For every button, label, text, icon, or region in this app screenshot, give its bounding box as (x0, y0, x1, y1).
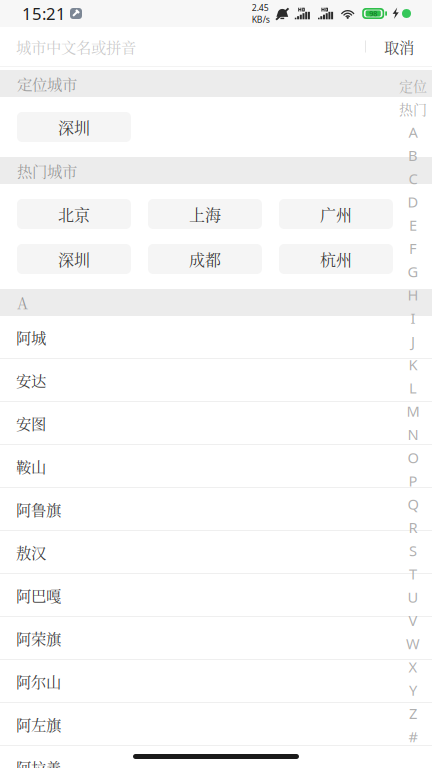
staticText: Y (409, 680, 417, 700)
button[interactable]: 杭州 (279, 244, 393, 274)
button[interactable]: 安图 (0, 402, 432, 445)
staticText: 2.45 KB/s (252, 2, 270, 25)
button[interactable]: Z (394, 702, 432, 725)
button[interactable]: T (394, 562, 432, 585)
staticText: J (411, 331, 415, 351)
button[interactable]: 阿尔山 (0, 660, 432, 703)
staticText: 上海 (189, 202, 221, 225)
staticText: R (408, 517, 417, 537)
button[interactable]: Y (394, 678, 432, 702)
button[interactable]: B (394, 144, 432, 167)
staticText: 阿巴嘎 (16, 584, 61, 606)
staticText: 阿尔山 (16, 670, 61, 692)
button[interactable]: 成都 (148, 244, 262, 274)
staticText: 热门城市 (17, 159, 77, 181)
button[interactable]: 阿巴嘎 (0, 574, 432, 617)
staticText: A (408, 122, 417, 142)
button[interactable]: 北京 (17, 199, 131, 229)
staticText: 阿荣旗 (16, 627, 61, 649)
button[interactable]: I (394, 306, 432, 330)
button[interactable]: 取消 (366, 27, 432, 66)
staticText: 阿拉善 (16, 756, 61, 768)
button[interactable]: P (394, 469, 432, 492)
staticText: E (409, 215, 417, 235)
staticText: 安图 (16, 412, 46, 434)
staticText: 广州 (320, 202, 352, 225)
staticText: F (409, 238, 417, 258)
staticText: 定位城市 (17, 72, 77, 94)
staticText: H (407, 285, 418, 305)
staticText: 热门 (399, 99, 427, 119)
staticText: 15:21 (22, 2, 66, 25)
button[interactable]: G (394, 260, 432, 283)
button[interactable]: D (394, 190, 432, 213)
staticText: T (409, 564, 417, 584)
staticText: D (407, 192, 418, 212)
staticText: 鞍山 (16, 455, 46, 477)
button[interactable]: C (394, 167, 432, 190)
staticText: 成都 (189, 247, 221, 270)
staticText: 杭州 (320, 247, 352, 270)
staticText: G (407, 261, 418, 281)
button[interactable]: 广州 (279, 199, 393, 229)
button[interactable]: 深圳 (17, 112, 131, 142)
button[interactable]: K (394, 353, 432, 376)
button[interactable]: 热门 (394, 97, 432, 120)
staticText: V (408, 610, 417, 630)
button[interactable]: 敖汉 (0, 531, 432, 574)
staticText: O (407, 447, 418, 467)
staticText: C (408, 168, 417, 188)
button[interactable]: X (394, 655, 432, 678)
button[interactable]: A (394, 120, 432, 144)
staticText: A (17, 291, 28, 313)
staticText: I (410, 308, 415, 328)
button[interactable]: 定位 (394, 74, 432, 97)
staticText: Q (407, 494, 418, 514)
staticText: M (406, 401, 419, 421)
staticText: L (409, 378, 417, 398)
button[interactable]: J (394, 330, 432, 353)
staticText: 阿城 (16, 326, 46, 348)
button[interactable]: H (394, 283, 432, 306)
button[interactable]: F (394, 237, 432, 260)
staticText: 98 (369, 8, 377, 18)
button[interactable]: L (394, 376, 432, 399)
button[interactable]: 深圳 (17, 244, 131, 274)
button[interactable]: O (394, 446, 432, 469)
staticText: # (408, 726, 417, 746)
staticText: 定位 (399, 75, 427, 96)
button[interactable]: N (394, 423, 432, 446)
button[interactable]: Q (394, 492, 432, 516)
button[interactable]: R (394, 516, 432, 539)
staticText: 阿左旗 (16, 713, 61, 735)
button[interactable]: 上海 (148, 199, 262, 229)
staticText: 深圳 (58, 115, 90, 138)
button[interactable]: 阿鲁旗 (0, 488, 432, 531)
button[interactable]: 阿左旗 (0, 703, 432, 746)
button[interactable]: 阿拉善 (0, 746, 432, 768)
button[interactable]: 阿荣旗 (0, 617, 432, 660)
button[interactable]: U (394, 585, 432, 609)
button[interactable]: W (394, 632, 432, 655)
button[interactable]: 鞍山 (0, 445, 432, 488)
button[interactable]: 阿城 (0, 316, 432, 359)
staticText: N (407, 424, 418, 444)
staticText: 深圳 (58, 247, 90, 270)
staticText: 北京 (58, 202, 90, 225)
staticText: Z (409, 703, 417, 723)
staticText: P (408, 471, 417, 491)
staticText: K (408, 354, 417, 374)
button[interactable]: # (394, 725, 432, 748)
staticText: 城市中文名或拼音 (16, 35, 136, 57)
button[interactable]: 安达 (0, 359, 432, 402)
staticText: 取消 (384, 35, 414, 57)
staticText: X (408, 657, 417, 677)
staticText: B (408, 145, 418, 165)
button[interactable]: E (394, 213, 432, 237)
staticText: W (406, 633, 420, 653)
button[interactable]: S (394, 539, 432, 562)
button[interactable]: M (394, 399, 432, 423)
staticText: 安达 (16, 369, 46, 391)
button[interactable]: V (394, 609, 432, 632)
staticText: 阿鲁旗 (16, 498, 61, 520)
